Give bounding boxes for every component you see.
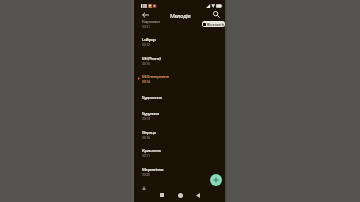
staticText: Будильник [142,94,162,100]
staticText: 00:16 [142,61,150,66]
staticText: 00:16 [142,135,150,140]
staticText: Mi Електронна [142,73,169,79]
staticText: Bluetooth [207,22,224,27]
staticText: Вітрець [142,129,156,135]
staticText: Бурульки [142,110,159,116]
staticText: Mi (Phone) [142,55,161,61]
button[interactable]: Мерехтіння [134,162,225,180]
staticText: 00:21 [142,24,150,29]
button[interactable]: Mi (Phone) [134,51,225,69]
staticText: 00:12 [142,42,150,47]
staticText: 00:14 [142,79,150,84]
button[interactable]: Back [139,9,151,21]
button[interactable]: Search [210,8,222,20]
button[interactable]: Add [210,174,222,186]
staticText: Кришталь [142,147,161,153]
button[interactable]: Кришталь [134,143,225,161]
button[interactable]: Бурульки [134,106,225,124]
button[interactable]: Mi Електронна [134,69,225,87]
button[interactable]: Back [192,189,204,201]
button[interactable]: Будильник [134,88,225,106]
staticText: 00:20 [142,172,150,177]
button[interactable]: Recents [156,189,168,201]
staticText: Карнавал [142,18,160,24]
button[interactable]: Home [174,189,186,201]
button[interactable]: Карнавал [134,14,225,32]
staticText: Мелодія [170,12,191,19]
button[interactable]: Вітрець [134,125,225,143]
staticText: Lollipop [142,36,156,42]
button[interactable]: Bluetooth [202,21,225,27]
staticText: 00:11 [142,153,150,158]
button[interactable]: Lollipop [134,32,225,50]
staticText: Мерехтіння [142,166,164,172]
staticText: 00:13 [142,116,150,121]
